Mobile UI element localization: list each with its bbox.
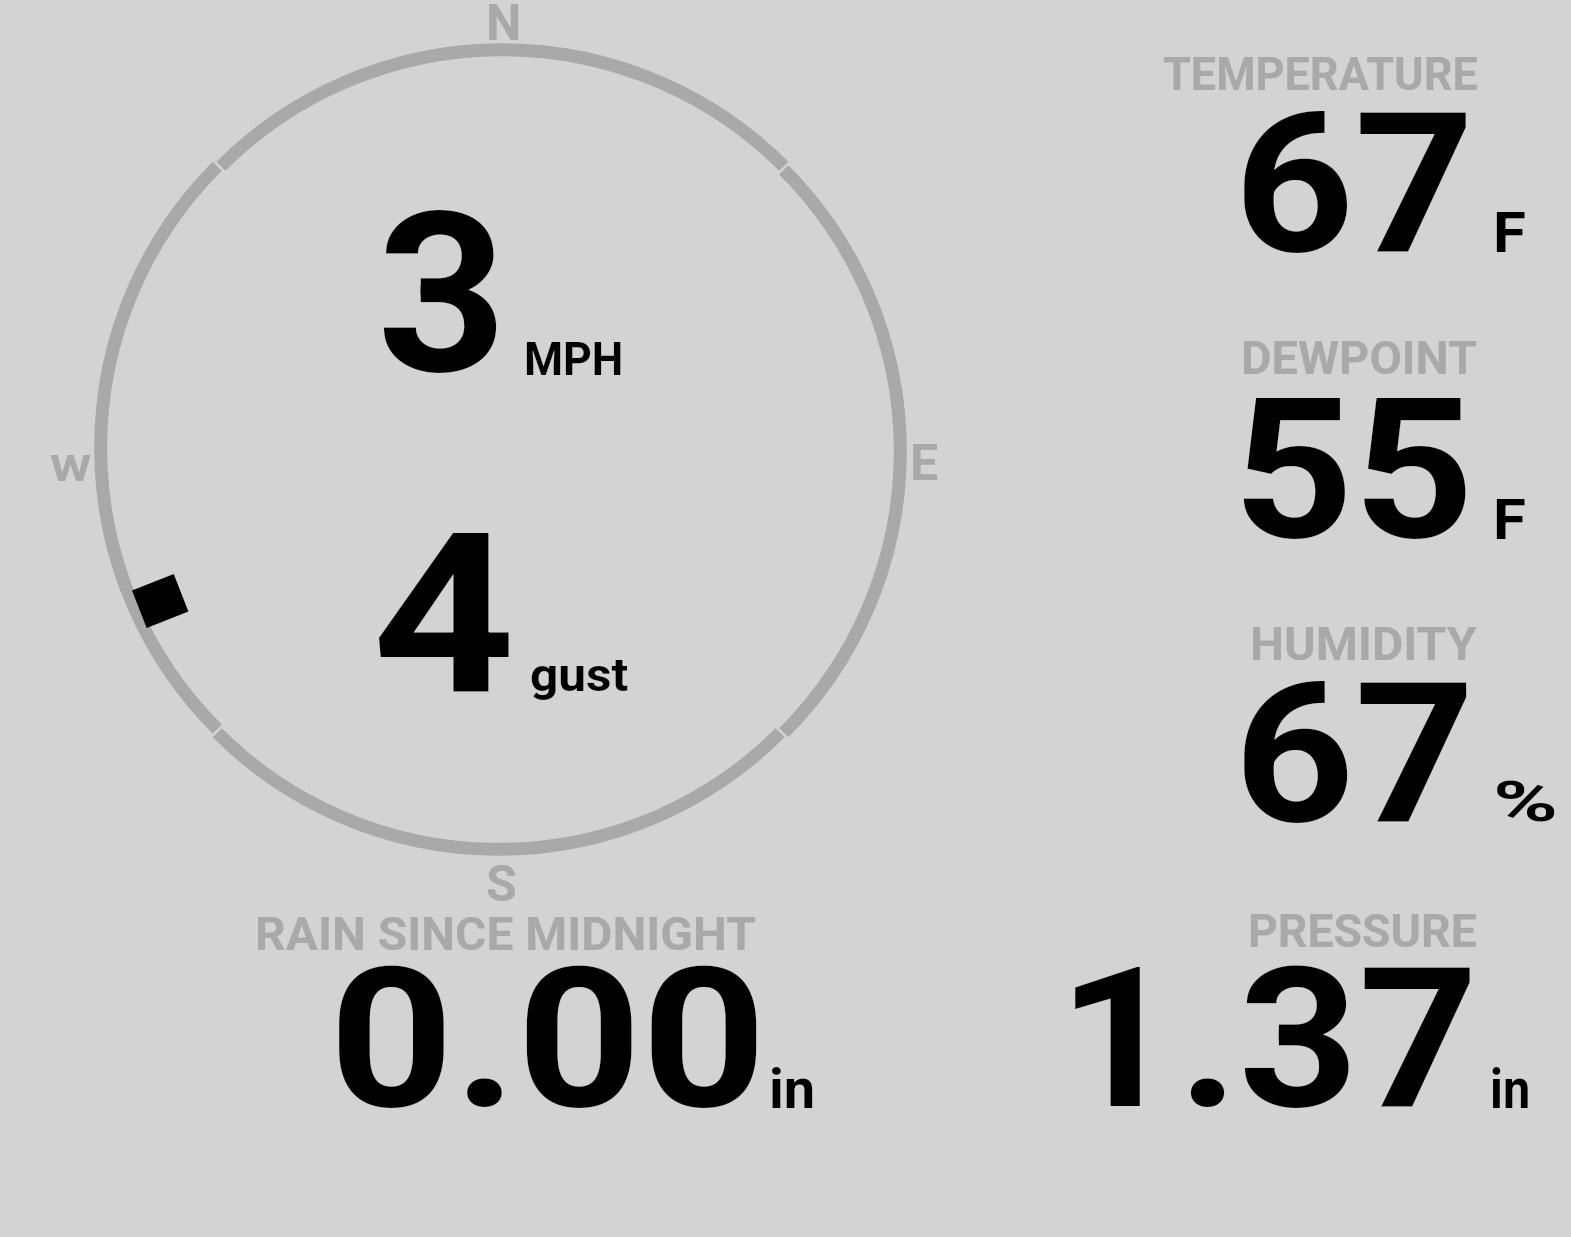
staticText: DEWPOINT xyxy=(1241,330,1478,385)
staticText: 3 xyxy=(377,165,508,425)
staticText: 0.00 xyxy=(329,925,767,1154)
staticText: 67 xyxy=(1234,640,1475,869)
button[interactable]: Dewpoint 55 degrees Fahrenheit xyxy=(1000,325,1571,555)
staticText: in xyxy=(769,1056,816,1122)
staticText: N xyxy=(486,0,522,53)
button[interactable]: Humidity 67 percent xyxy=(1000,610,1571,840)
staticText: 4 xyxy=(372,486,516,746)
staticText: HUMIDITY xyxy=(1250,616,1477,671)
staticText: E xyxy=(910,434,939,493)
button[interactable]: Temperature 67 degrees Fahrenheit xyxy=(1000,40,1571,270)
staticText: PRESSURE xyxy=(1248,903,1477,958)
staticText: gust xyxy=(530,647,629,702)
staticText: % xyxy=(1493,769,1559,835)
button[interactable]: Wind 3 miles per hour, gusting 4, from w… xyxy=(85,35,915,865)
staticText: F xyxy=(1493,200,1526,266)
button[interactable]: Pressure 1.37 inches xyxy=(1000,895,1571,1125)
staticText: 1.37 xyxy=(1058,925,1479,1154)
staticText: 67 xyxy=(1234,70,1475,299)
staticText: TEMPERATURE xyxy=(1163,46,1478,101)
staticText: RAIN SINCE MIDNIGHT xyxy=(255,906,757,961)
staticText: MPH xyxy=(524,331,624,386)
staticText: F xyxy=(1493,487,1526,553)
staticText: W xyxy=(50,446,91,490)
button[interactable]: Rain since midnight 0.00 inches xyxy=(120,895,870,1125)
staticText: 55 xyxy=(1233,356,1474,585)
staticText: in xyxy=(1490,1056,1531,1122)
staticText: S xyxy=(486,855,517,914)
